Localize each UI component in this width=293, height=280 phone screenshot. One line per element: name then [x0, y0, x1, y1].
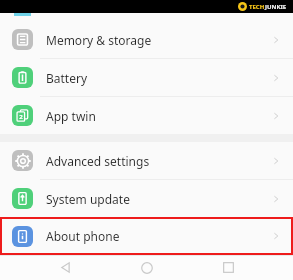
staticText: 2: [19, 113, 23, 121]
button[interactable]: Memory & storage: [0, 21, 293, 59]
button[interactable]: Battery: [0, 59, 293, 97]
button[interactable]: Back: [48, 255, 82, 280]
button[interactable]: About phone: [0, 217, 293, 255]
button[interactable]: Recent apps: [211, 255, 245, 280]
staticText: Advanced settings: [46, 153, 150, 169]
button[interactable]: 2: [0, 97, 293, 134]
staticText: JUNKIE: [265, 3, 287, 11]
staticText: Memory & storage: [46, 32, 152, 48]
button[interactable]: System update: [0, 180, 293, 217]
button[interactable]: Advanced settings: [0, 142, 293, 180]
staticText: TECH: [249, 3, 265, 11]
staticText: App twin: [46, 108, 96, 124]
button[interactable]: Home: [130, 255, 164, 280]
staticText: Battery: [46, 70, 88, 86]
staticText: About phone: [46, 228, 120, 244]
staticText: System update: [46, 191, 130, 207]
